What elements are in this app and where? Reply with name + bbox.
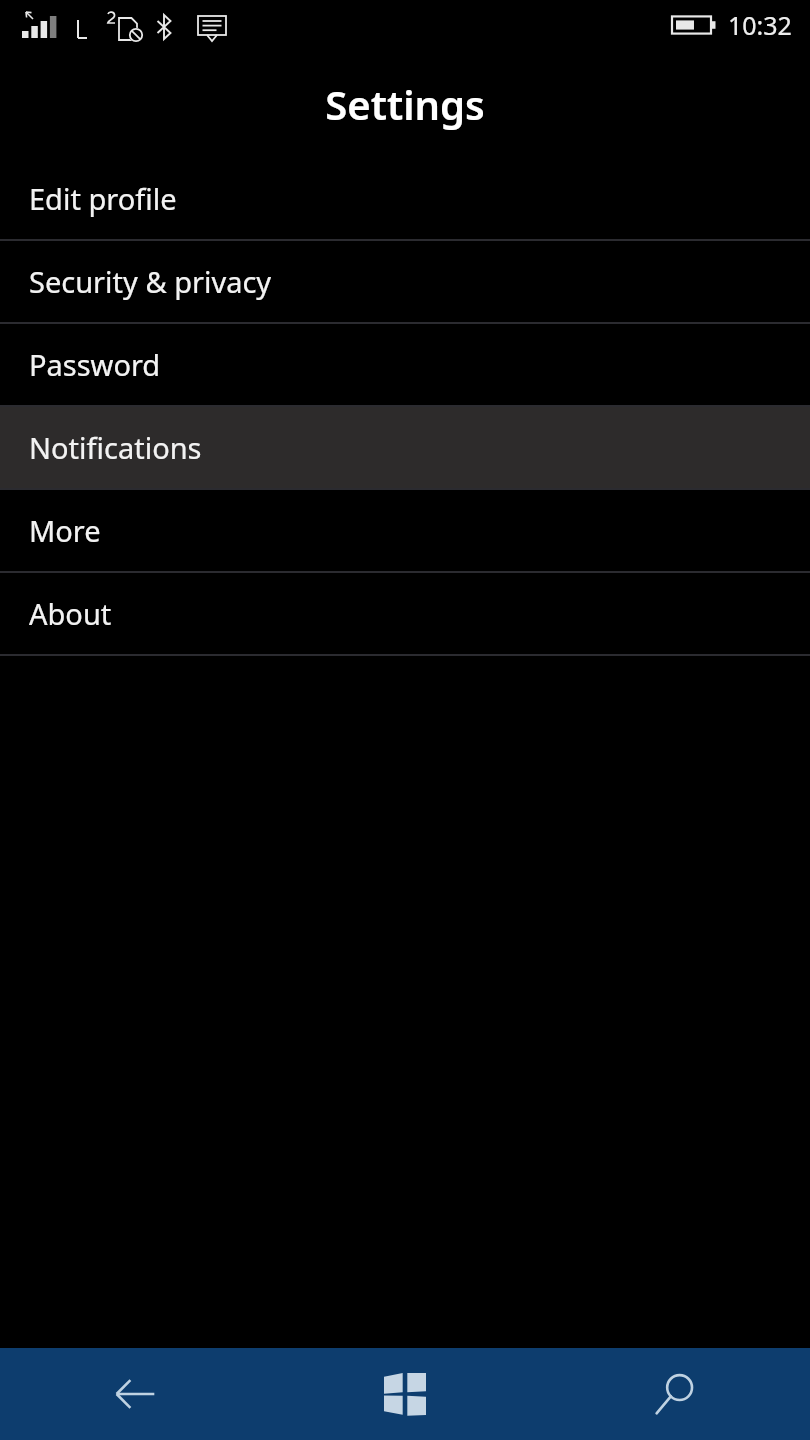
staticText: Password (29, 345, 161, 384)
staticText: More (29, 511, 101, 550)
staticText: About (29, 594, 112, 633)
button[interactable]: About (0, 573, 810, 654)
staticText: Security & privacy (29, 262, 272, 301)
staticText: Notifications (29, 428, 202, 467)
button[interactable]: More (0, 490, 810, 571)
button[interactable]: Start (270, 1348, 540, 1440)
button[interactable]: Notifications (0, 407, 810, 488)
staticText: Edit profile (29, 179, 177, 218)
button[interactable]: Back (0, 1348, 270, 1440)
staticText: Settings (325, 77, 485, 131)
button[interactable]: Password (0, 324, 810, 405)
button[interactable]: Security & privacy (0, 241, 810, 322)
button[interactable]: Edit profile (0, 158, 810, 239)
button[interactable]: Search (540, 1348, 810, 1440)
staticText: 10:32 (728, 8, 792, 42)
